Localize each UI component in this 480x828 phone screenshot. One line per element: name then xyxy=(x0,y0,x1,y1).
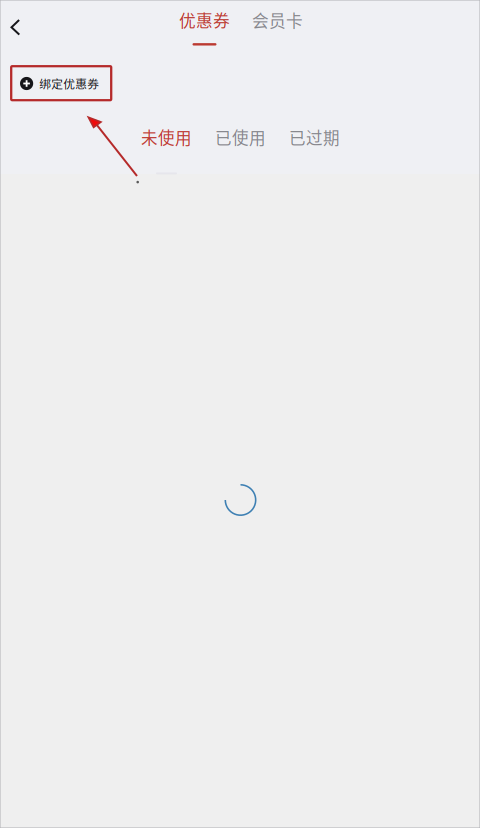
staticText: 已过期 xyxy=(289,125,340,149)
button[interactable]: Back xyxy=(0,10,31,44)
staticText: 会员卡 xyxy=(252,8,303,32)
staticText: 未使用 xyxy=(141,125,192,149)
staticText: 绑定优惠券 xyxy=(39,75,99,92)
staticText: 已使用 xyxy=(215,125,266,149)
button[interactable]: 已过期 xyxy=(281,122,347,152)
button[interactable]: 已使用 xyxy=(207,122,273,152)
button[interactable]: 优惠券 xyxy=(179,8,230,45)
button[interactable]: 未使用 xyxy=(133,122,199,152)
button[interactable]: 会员卡 xyxy=(252,8,303,45)
staticText: 优惠券 xyxy=(179,8,230,32)
button[interactable]: 绑定优惠券 xyxy=(10,66,113,101)
